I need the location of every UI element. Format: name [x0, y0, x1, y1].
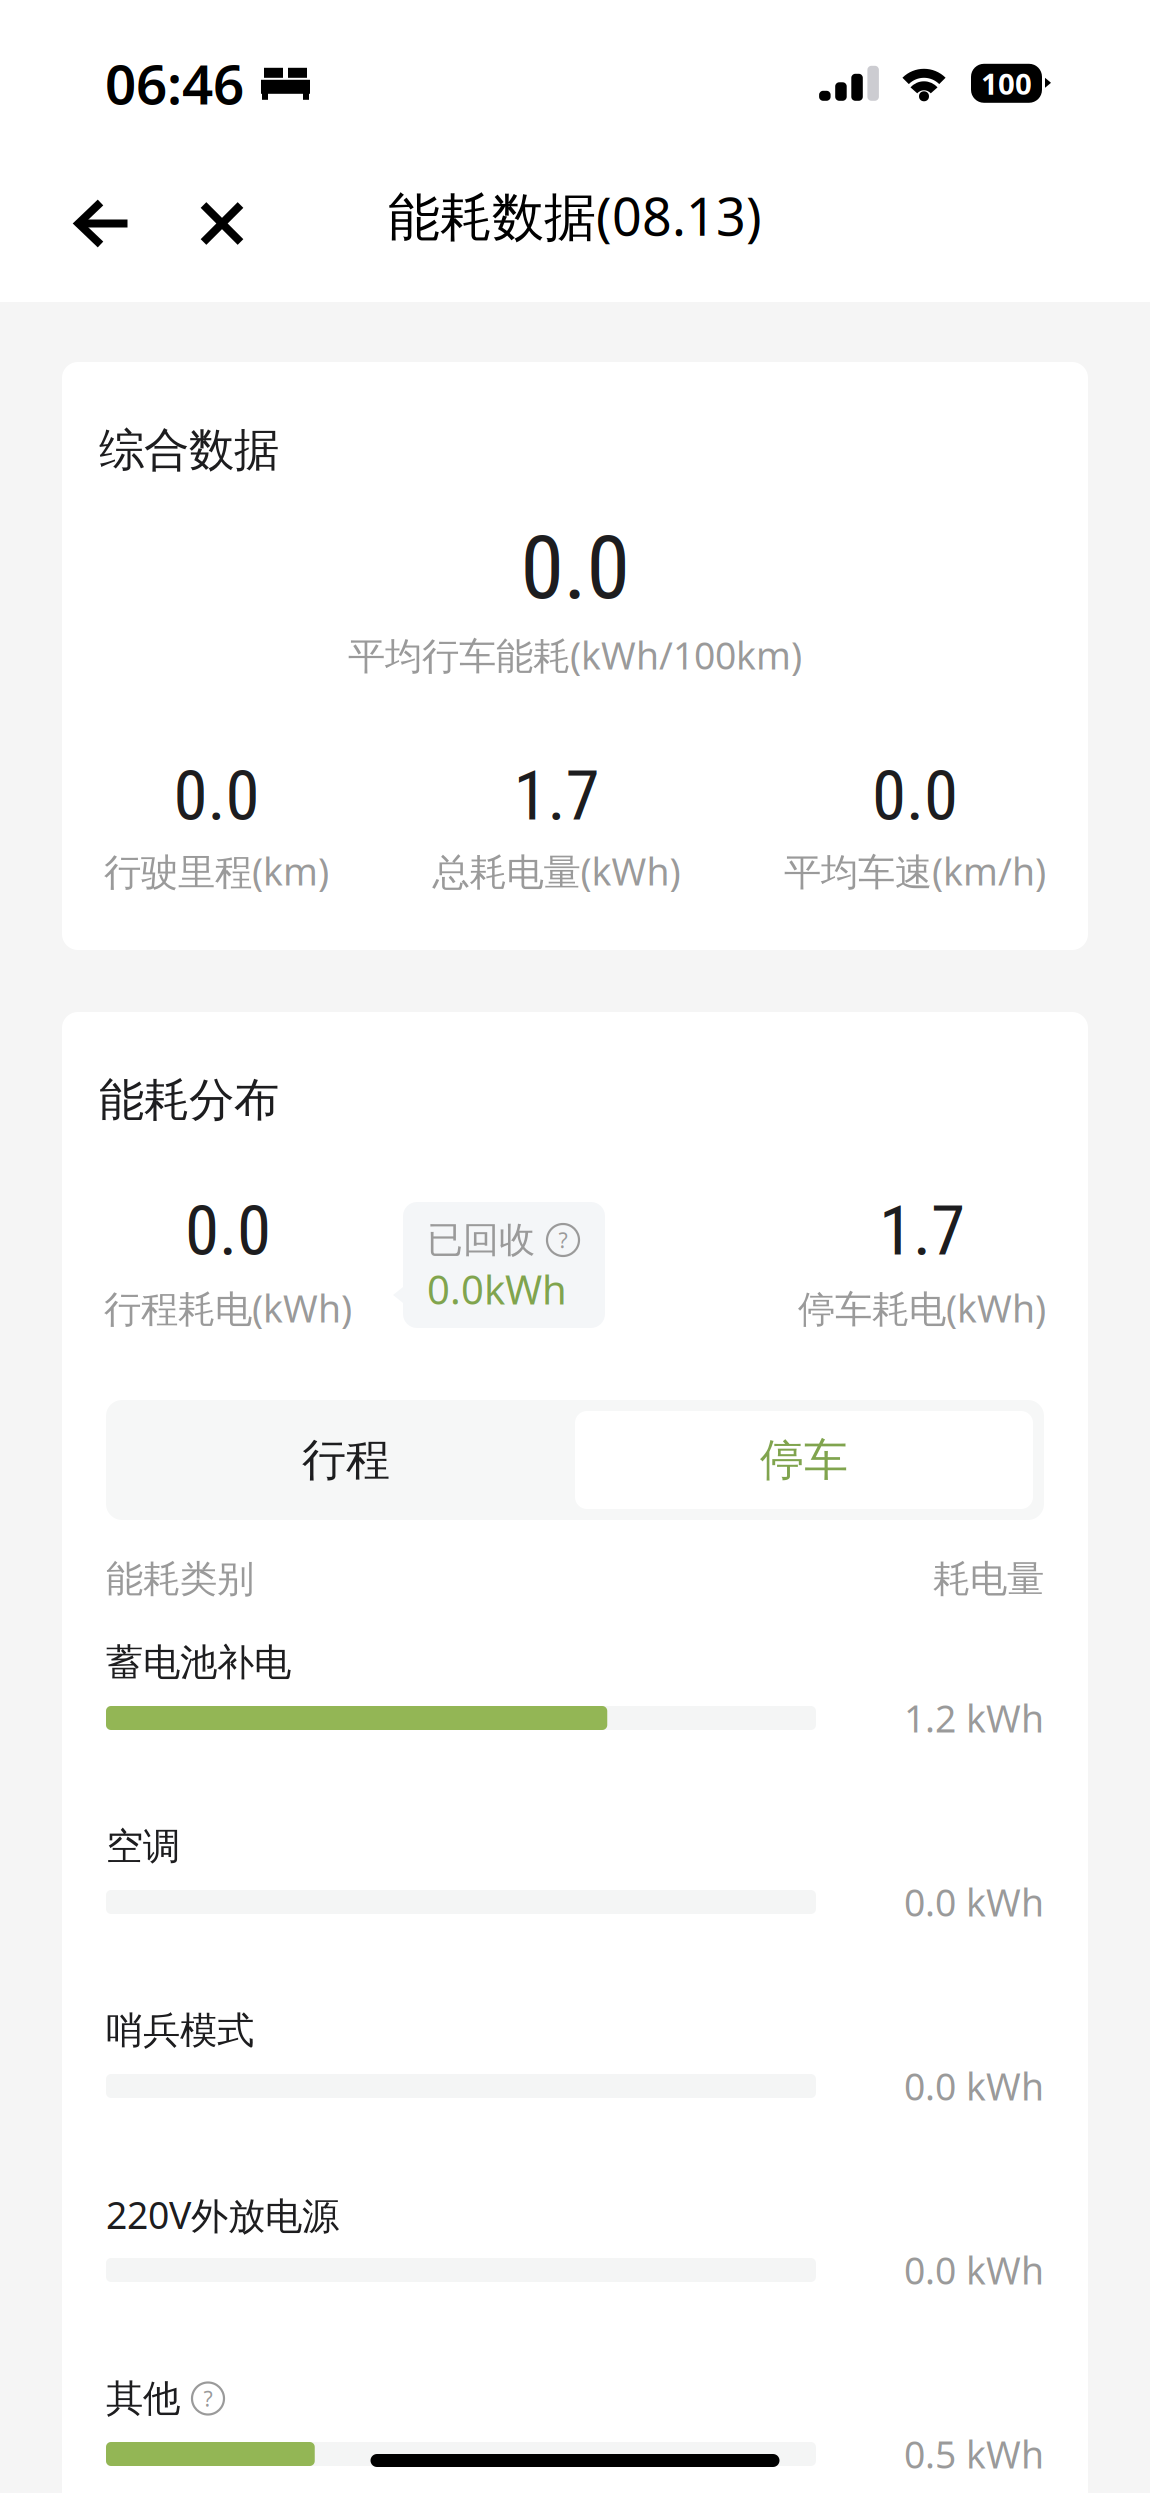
staticText: 能耗类别 — [106, 1556, 254, 1602]
staticText: 平均车速(km/h) — [784, 846, 1046, 896]
staticText: 综合数据 — [99, 422, 279, 478]
staticText: 0.5 kWh — [904, 2429, 1044, 2479]
staticText: 06:46 — [105, 47, 244, 120]
staticText: ? — [203, 2384, 212, 2413]
staticText: 停车耗电(kWh) — [798, 1283, 1046, 1333]
staticText: 0.0 — [520, 516, 629, 619]
staticText: 100 — [981, 64, 1032, 103]
button[interactable]: 停车 — [575, 1411, 1033, 1509]
staticText: 0.0kWh — [427, 1262, 567, 1315]
staticText: 0.0 kWh — [904, 2245, 1044, 2295]
staticText: 1.2 kWh — [904, 1693, 1044, 1743]
staticText: 平均行车能耗(kWh/100km) — [348, 630, 802, 680]
staticText: 能耗分布 — [99, 1072, 279, 1128]
staticText: 已回收 — [427, 1218, 535, 1262]
staticText: ? — [558, 1226, 567, 1254]
staticText: 空调 — [106, 1824, 180, 1869]
staticText: 蓄电池补电 — [106, 1640, 291, 1685]
button[interactable]: 返回 — [36, 145, 167, 302]
staticText: 耗电量 — [933, 1556, 1044, 1602]
staticText: 0.0 — [173, 756, 259, 836]
staticText: 其他 — [106, 2376, 180, 2421]
staticText: 220V外放电源 — [106, 2190, 339, 2239]
staticText: 0.0 — [185, 1191, 271, 1271]
staticText: 能耗数据(08.13) — [388, 181, 762, 250]
button[interactable]: 行程 — [117, 1411, 575, 1509]
staticText: 行驶里程(km) — [104, 846, 329, 896]
staticText: 停车 — [760, 1433, 848, 1487]
staticText: 哨兵模式 — [106, 2008, 254, 2053]
staticText: 1.7 — [879, 1191, 965, 1271]
staticText: 总耗电量(kWh) — [432, 846, 680, 896]
staticText: 0.0 kWh — [904, 1877, 1044, 1927]
staticText: 1.7 — [513, 756, 599, 836]
button[interactable]: 关闭 — [167, 145, 277, 302]
staticText: 行程 — [302, 1433, 390, 1487]
staticText: 行程耗电(kWh) — [104, 1283, 352, 1333]
staticText: 0.0 — [872, 756, 958, 836]
staticText: 0.0 kWh — [904, 2061, 1044, 2111]
